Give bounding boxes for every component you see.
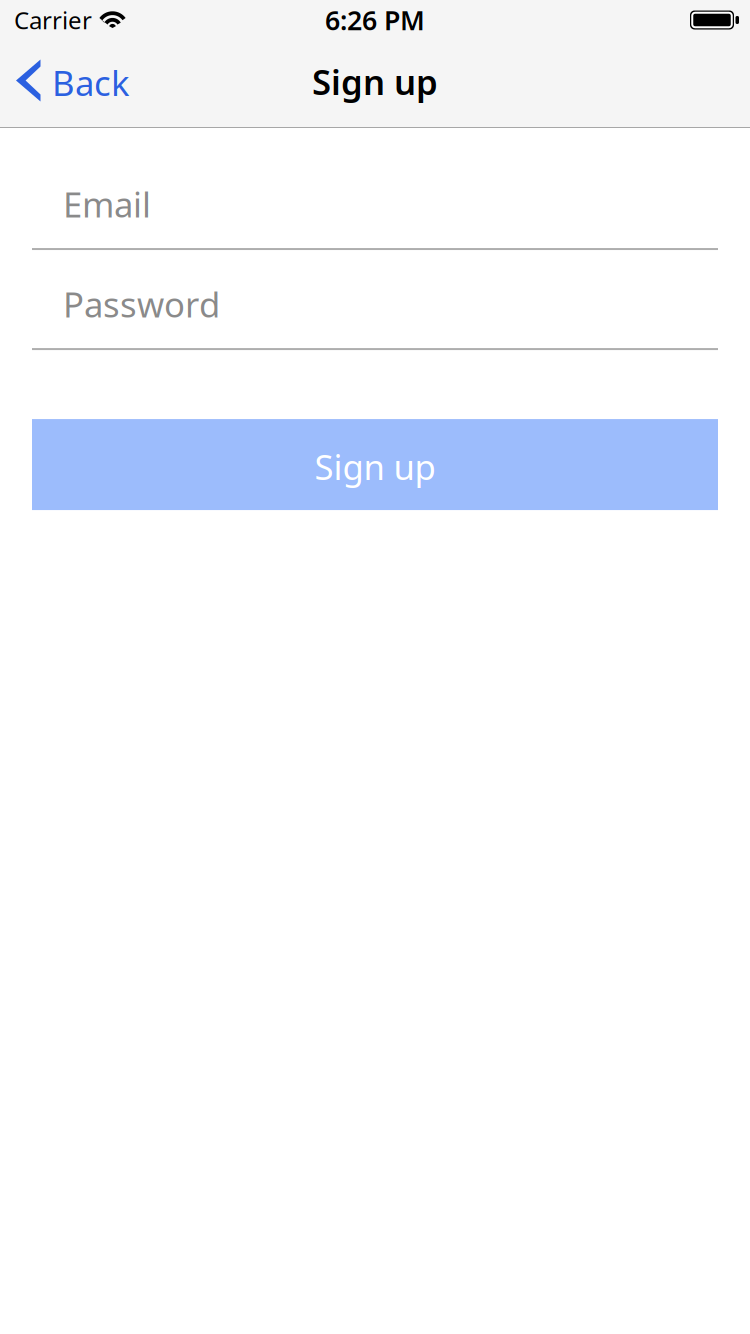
staticText: Password bbox=[63, 281, 220, 327]
button[interactable]: Sign up bbox=[32, 419, 718, 510]
button[interactable]: Back bbox=[0, 40, 146, 127]
button[interactable]: Email bbox=[32, 165, 718, 250]
staticText: Sign up bbox=[312, 58, 438, 104]
button[interactable]: Password bbox=[32, 265, 718, 350]
staticText: Carrier bbox=[14, 4, 92, 36]
staticText: Back bbox=[52, 59, 130, 105]
staticText: Sign up bbox=[314, 444, 435, 490]
staticText: 6:26 PM bbox=[325, 2, 425, 38]
staticText: Email bbox=[63, 181, 151, 227]
